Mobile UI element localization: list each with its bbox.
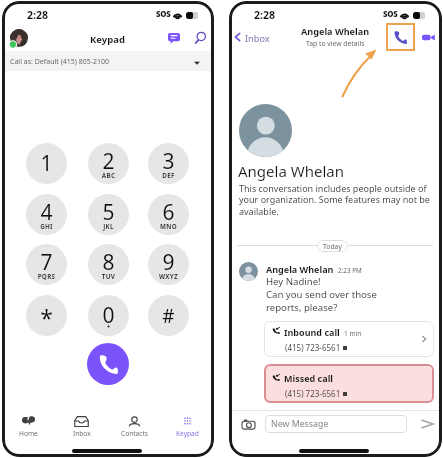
button[interactable]: 5 [88,194,129,235]
staticText: 1 [26,149,67,178]
button[interactable]: Home [2,413,55,439]
staticText: 0 [88,301,129,330]
staticText: Inbox [73,429,91,438]
button[interactable]: Inbox [231,29,273,45]
button[interactable]: Missed call [264,364,434,403]
button[interactable]: Inbox [55,413,108,439]
button[interactable]: 1 [26,143,67,184]
staticText: 1 min [344,329,362,338]
staticText: 3 [148,147,189,176]
staticText: GHI [26,222,67,231]
staticText: 8 [88,248,129,277]
staticText: 9 [148,248,189,277]
button[interactable]: Camera [240,416,256,432]
button[interactable]: Profile [10,29,28,47]
staticText: 4 [26,198,67,227]
staticText: Can you send over those [266,288,377,301]
button[interactable]: 9 [148,244,189,285]
staticText: 2:28 [254,8,275,22]
staticText: 2:28 [27,8,48,22]
staticText: (415) 723-6561 [285,388,341,399]
staticText: # [148,303,189,329]
button[interactable]: Inbound call [264,321,434,357]
staticText: Keypad [176,429,199,438]
staticText: Angela Whelan [238,161,344,181]
staticText: Inbox [245,32,270,45]
button[interactable]: 0 [88,295,129,336]
staticText: Hey Nadine! [266,275,321,288]
button[interactable]: 7 [26,244,67,285]
staticText: Angela Whelan [266,263,334,275]
staticText: MNO [148,222,189,231]
staticText: Home [19,429,38,438]
staticText: Contacts [121,429,149,438]
staticText: SOS [156,9,171,20]
staticText: Missed call [284,372,334,384]
staticText: Angela Whelan [301,25,370,37]
staticText: SOS [383,9,398,20]
staticText: TUV [88,272,129,281]
button[interactable]: Call [386,23,415,51]
staticText: 7 [26,248,67,277]
staticText: * [26,302,67,333]
button[interactable]: 4 [26,194,67,235]
button[interactable]: 3 [148,143,189,184]
staticText: This conversation includes people outsid… [239,182,432,218]
button[interactable]: Messages [166,30,182,46]
button[interactable]: 8 [88,244,129,285]
staticText: Call as: Default (415) 805-2100 [10,57,109,67]
button[interactable]: Call [87,343,129,385]
button[interactable]: * [26,295,67,336]
staticText: Inbound call [284,326,340,338]
staticText: 2 [88,147,129,176]
staticText: 2:23 PM [338,266,362,275]
button[interactable]: New Message [265,415,407,433]
staticText: reports, please? [266,301,338,314]
button[interactable]: Search [192,29,209,46]
staticText: PQRS [26,272,67,281]
staticText: Today [323,242,342,251]
staticText: 6 [148,198,189,227]
staticText: Tap to view details [306,39,365,48]
button[interactable]: Angela Whelan [293,25,378,48]
staticText: New Message [271,418,329,430]
staticText: Keypad [90,33,125,46]
button[interactable]: Contacts [108,413,161,439]
button[interactable]: Send [419,416,435,432]
staticText: JKL [88,222,129,231]
staticText: WXYZ [148,272,189,281]
button[interactable]: Video call [420,29,436,45]
button[interactable]: # [148,295,189,336]
staticText: DEF [148,171,189,180]
button[interactable]: Keypad [161,413,214,439]
staticText: + [88,322,129,331]
staticText: 5 [88,198,129,227]
button[interactable]: 2 [88,143,129,184]
staticText: (415) 723-6561 [285,342,341,353]
staticText: ABC [88,171,129,180]
button[interactable]: 6 [148,194,189,235]
